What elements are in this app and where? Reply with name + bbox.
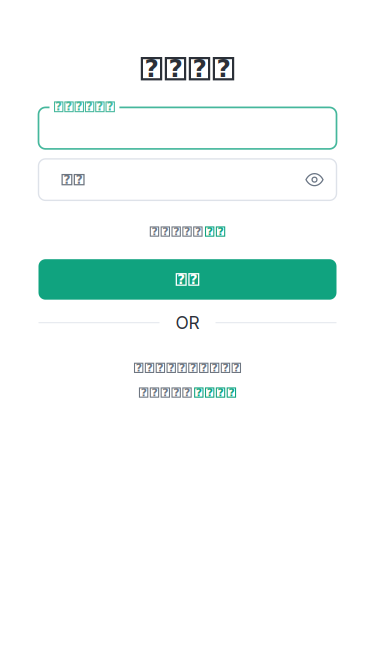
staticText: ? <box>177 271 185 287</box>
staticText: ? <box>195 225 201 238</box>
staticText: ? <box>207 386 213 399</box>
staticText: ? <box>136 361 142 374</box>
staticText: ? <box>55 100 62 113</box>
staticText: ? <box>76 100 83 113</box>
staticText: ? <box>207 225 213 238</box>
staticText: ? <box>192 54 206 83</box>
staticText: ? <box>76 172 83 187</box>
staticText: ? <box>228 386 234 399</box>
staticText: ? <box>86 100 93 113</box>
staticText: ? <box>190 361 196 374</box>
staticText: ? <box>162 225 168 238</box>
staticText: ? <box>184 386 190 399</box>
staticText: OR <box>175 312 199 333</box>
staticText: ? <box>179 361 185 374</box>
button[interactable]: Show password <box>298 164 330 196</box>
staticText: ? <box>173 225 179 238</box>
staticText: ? <box>157 361 163 374</box>
staticText: ? <box>190 271 198 287</box>
staticText: ? <box>63 172 70 187</box>
button[interactable]: ? <box>138 218 237 245</box>
staticText: ? <box>201 361 207 374</box>
staticText: ? <box>144 54 158 83</box>
staticText: ? <box>168 54 182 83</box>
staticText: ? <box>96 100 103 113</box>
staticText: ? <box>184 225 190 238</box>
staticText: ? <box>233 361 239 374</box>
staticText: ? <box>162 386 168 399</box>
staticText: ? <box>151 225 157 238</box>
staticText: ? <box>216 54 230 83</box>
staticText: ? <box>65 100 72 113</box>
staticText: ? <box>196 386 202 399</box>
button[interactable]: ? <box>122 355 253 406</box>
staticText: ? <box>212 361 218 374</box>
staticText: ? <box>107 100 114 113</box>
staticText: ? <box>151 386 157 399</box>
staticText: ? <box>217 225 223 238</box>
button[interactable]: ? <box>38 259 336 300</box>
staticText: ? <box>173 386 179 399</box>
staticText: ? <box>146 361 152 374</box>
staticText: ? <box>168 361 174 374</box>
staticText: ? <box>141 386 147 399</box>
staticText: ? <box>217 386 223 399</box>
staticText: ? <box>222 361 228 374</box>
